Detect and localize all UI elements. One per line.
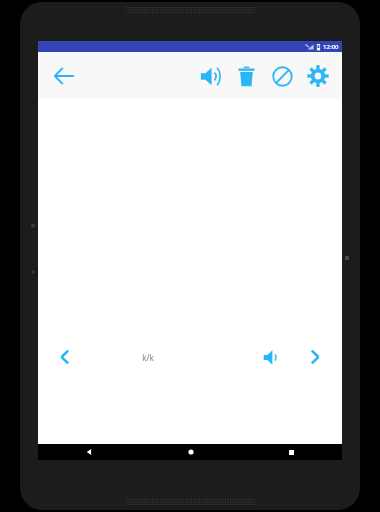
button[interactable]: Play sound (192, 58, 228, 94)
button[interactable]: Back (38, 444, 140, 460)
staticText: 12:00 (323, 43, 339, 51)
button[interactable]: Back (46, 58, 82, 94)
button[interactable]: Recents (241, 444, 342, 460)
button[interactable]: Previous (48, 340, 82, 374)
button[interactable]: Home (140, 444, 241, 460)
button[interactable]: Block (264, 58, 300, 94)
staticText: k/k (142, 352, 154, 363)
button[interactable]: Next (298, 340, 332, 374)
button[interactable]: Settings (300, 58, 336, 94)
button[interactable]: Play sound (254, 340, 288, 374)
button[interactable]: Delete (228, 58, 264, 94)
